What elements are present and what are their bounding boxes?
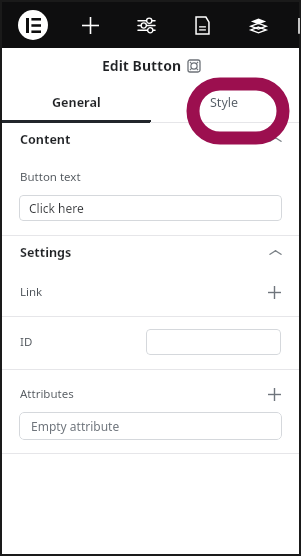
button[interactable]: Layers (244, 11, 272, 39)
button[interactable]: General (2, 82, 150, 123)
staticText: Attributes (20, 386, 74, 402)
staticText: Content (20, 131, 71, 148)
staticText: Click here (29, 200, 84, 216)
staticText: Edit Button (102, 56, 182, 75)
button[interactable]: Empty attribute (19, 412, 282, 440)
button[interactable]: Style (150, 82, 299, 123)
staticText: Style (210, 94, 239, 111)
staticText: Settings (20, 244, 72, 261)
staticText: General (52, 94, 101, 111)
button[interactable]: Elementor menu (18, 10, 48, 40)
button[interactable]: Content (2, 123, 299, 155)
staticText: Link (20, 284, 43, 300)
button[interactable]: Add element (76, 11, 104, 39)
button[interactable]: Settings sliders (132, 11, 160, 39)
staticText: Button text (20, 169, 81, 185)
button[interactable]: Link (2, 284, 299, 300)
button[interactable]: Settings (2, 236, 299, 268)
button[interactable]: Page document (188, 11, 216, 39)
staticText: Empty attribute (31, 418, 120, 434)
button[interactable]: Attributes (2, 386, 299, 402)
staticText: ID (20, 334, 33, 350)
button[interactable]: ID (20, 329, 281, 355)
button[interactable]: Click here (19, 195, 282, 221)
